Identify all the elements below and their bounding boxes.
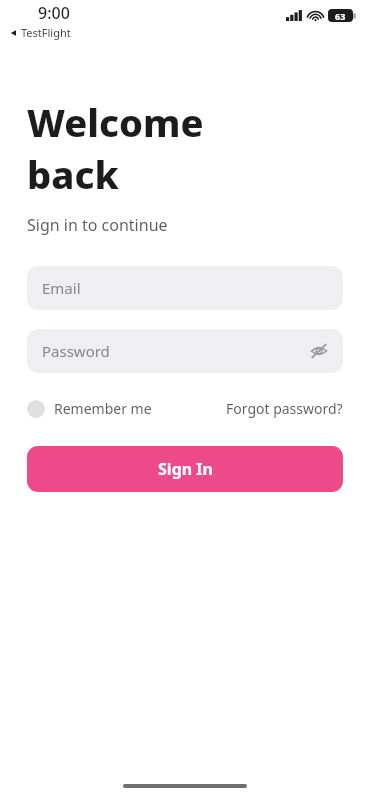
staticText: Email — [42, 278, 81, 298]
button[interactable]: Show password — [307, 339, 331, 363]
staticText: Forgot password? — [226, 399, 343, 418]
button[interactable]: Sign In — [27, 446, 343, 492]
button[interactable]: Remember me — [27, 399, 152, 418]
button[interactable]: Email — [27, 266, 343, 310]
staticText: TestFlight — [21, 25, 71, 40]
button[interactable]: Forgot password? — [226, 399, 343, 418]
button[interactable]: Password — [27, 329, 343, 373]
staticText: Remember me — [54, 399, 152, 418]
staticText: Password — [42, 341, 110, 361]
staticText: 63 — [335, 10, 346, 22]
staticText: back — [27, 148, 119, 200]
staticText: Sign In — [158, 458, 213, 480]
staticText: 9:00 — [38, 2, 70, 24]
staticText: Sign in to continue — [27, 214, 168, 236]
staticText: Welcome — [27, 96, 204, 148]
